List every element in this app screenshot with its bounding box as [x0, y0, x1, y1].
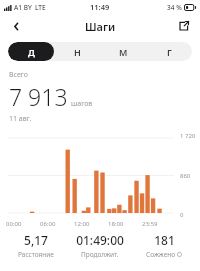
staticText: М — [119, 46, 128, 58]
button[interactable]: Back — [5, 15, 27, 37]
staticText: Шаги — [85, 19, 116, 34]
staticText: 181 — [154, 232, 175, 248]
staticText: 00:00 — [6, 220, 22, 228]
staticText: 23:59 — [142, 220, 158, 228]
staticText: Д — [28, 46, 35, 58]
staticText: 01:49:00 — [76, 232, 124, 248]
staticText: 11 авг. — [9, 114, 32, 124]
staticText: шагов — [71, 99, 93, 109]
staticText: Продолжит. — [81, 250, 119, 259]
button[interactable]: 181 — [132, 232, 196, 259]
button[interactable]: Н — [54, 42, 100, 61]
staticText: 5,17 — [24, 232, 48, 248]
staticText: 11:49 — [90, 2, 110, 12]
button[interactable]: Д — [8, 42, 54, 61]
staticText: 1 720 — [180, 132, 196, 140]
button[interactable]: 5,17 — [4, 232, 68, 259]
staticText: Всего — [9, 70, 28, 80]
staticText: 06:00 — [40, 220, 56, 228]
staticText: Г — [167, 46, 172, 58]
button[interactable]: Г — [146, 42, 192, 61]
staticText: A1 BY — [14, 3, 32, 12]
staticText: LTE — [35, 3, 46, 12]
staticText: 34 % — [167, 3, 182, 12]
button[interactable]: Share — [173, 15, 195, 37]
button[interactable]: М — [100, 42, 146, 61]
staticText: 860 — [180, 172, 191, 180]
staticText: 12:00 — [74, 220, 90, 228]
staticText: Расстояние — [18, 250, 54, 259]
staticText: 0 — [180, 211, 184, 219]
staticText: 18:00 — [108, 220, 124, 228]
staticText: 7 913 — [9, 81, 68, 112]
button[interactable]: 01:49:00 — [68, 232, 132, 259]
staticText: Сожжено — [146, 250, 176, 259]
staticText: Н — [74, 46, 81, 58]
